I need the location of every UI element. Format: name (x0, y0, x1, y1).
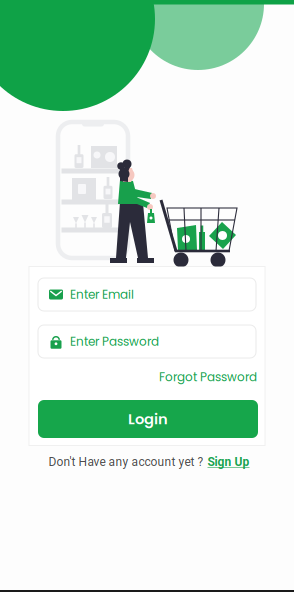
staticText: Login (128, 409, 168, 429)
button[interactable]: Sign Up (207, 455, 249, 469)
staticText: Enter Password (70, 333, 159, 350)
button[interactable]: Login (38, 400, 258, 438)
button[interactable]: Enter Email (38, 278, 256, 311)
button[interactable]: Forgot Password (147, 368, 257, 386)
staticText: Don't Have any account yet ? (48, 455, 203, 469)
staticText: Enter Email (70, 286, 134, 303)
staticText: Forgot Password (159, 369, 257, 385)
button[interactable]: Enter Password (38, 325, 256, 358)
staticText: Sign Up (207, 455, 249, 469)
